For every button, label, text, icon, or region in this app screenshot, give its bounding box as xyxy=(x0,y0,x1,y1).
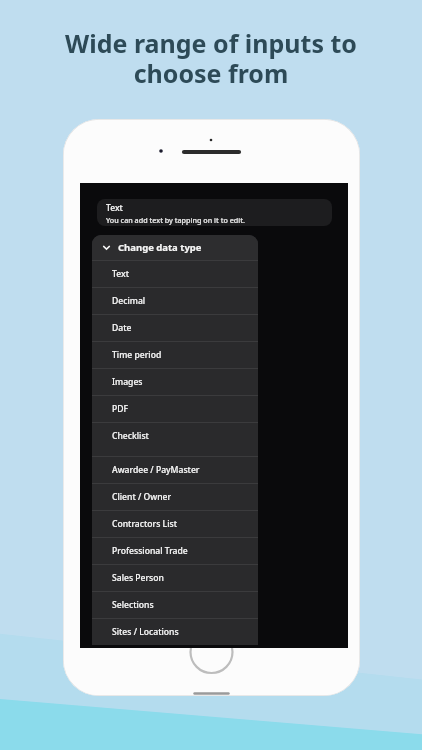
staticText: Sales Person xyxy=(112,572,164,584)
staticText: You can add text by tapping on it to edi… xyxy=(106,215,245,225)
staticText: PDF xyxy=(112,403,129,415)
button[interactable]: Images xyxy=(92,369,258,395)
button[interactable]: Selections xyxy=(92,592,258,618)
staticText: Decimal xyxy=(112,295,146,307)
staticText: Wide range of inputs to choose from xyxy=(18,26,404,91)
button[interactable]: Professional Trade xyxy=(92,538,258,564)
button[interactable]: Contractors List xyxy=(92,511,258,537)
button[interactable]: Decimal xyxy=(92,288,258,314)
other: Collapse xyxy=(102,243,111,252)
button[interactable]: Awardee / PayMaster xyxy=(92,457,258,483)
staticText: Professional Trade xyxy=(112,545,188,557)
staticText: Checklist xyxy=(112,430,149,442)
button[interactable]: Collapse xyxy=(92,235,258,260)
button[interactable]: Date xyxy=(92,315,258,341)
staticText: Images xyxy=(112,376,143,388)
staticText: Time period xyxy=(112,349,162,361)
button[interactable]: Client / Owner xyxy=(92,484,258,510)
button[interactable]: Sales Person xyxy=(92,565,258,591)
button[interactable]: Checklist xyxy=(92,423,258,449)
staticText: Date xyxy=(112,322,132,334)
staticText: Text xyxy=(106,202,123,214)
button[interactable]: Text xyxy=(97,199,332,226)
staticText: Client / Owner xyxy=(112,491,172,503)
button[interactable]: Time period xyxy=(92,342,258,368)
staticText: Text xyxy=(112,268,129,280)
button[interactable]: Text xyxy=(92,261,258,287)
staticText: Sites / Locations xyxy=(112,626,179,638)
button[interactable]: Sites / Locations xyxy=(92,619,258,645)
staticText: Contractors List xyxy=(112,518,177,530)
staticText: Change data type xyxy=(118,241,202,254)
staticText: Selections xyxy=(112,599,154,611)
button[interactable]: PDF xyxy=(92,396,258,422)
staticText: Awardee / PayMaster xyxy=(112,464,200,476)
